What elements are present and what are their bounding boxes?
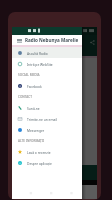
- staticText: Radio Nebunya Marelie: [25, 37, 79, 43]
- button[interactable]: Trimite-ne un email: [12, 113, 82, 124]
- button[interactable]: Open navigation menu: [17, 38, 22, 43]
- staticText: RADIO: [14, 50, 24, 54]
- staticText: SOCIAL MEDIA: [18, 73, 82, 77]
- staticText: CONTACT: [18, 95, 82, 99]
- staticText: Messenger: [27, 128, 45, 132]
- staticText: Despre aplicație: [27, 161, 52, 165]
- button[interactable]: Facebook: [12, 80, 82, 91]
- staticText: Intră pe WebSite: [27, 62, 53, 66]
- button[interactable]: Intră pe WebSite: [12, 58, 82, 69]
- staticText: Lasă o recenzie: [27, 150, 51, 154]
- button[interactable]: Despre aplicație: [12, 157, 82, 168]
- button[interactable]: Ascultă Radio: [12, 47, 82, 58]
- staticText: ALTE INFORMAȚII: [18, 139, 82, 143]
- staticText: Ascultă Radio: [27, 51, 48, 55]
- button[interactable]: Lasă o recenzie: [12, 146, 82, 157]
- button[interactable]: Sună-ne: [12, 102, 82, 113]
- staticText: Facebook: [27, 84, 42, 88]
- staticText: Sună-ne: [27, 106, 40, 110]
- button[interactable]: Messenger: [12, 124, 82, 135]
- staticText: Trimite-ne un email: [27, 117, 58, 121]
